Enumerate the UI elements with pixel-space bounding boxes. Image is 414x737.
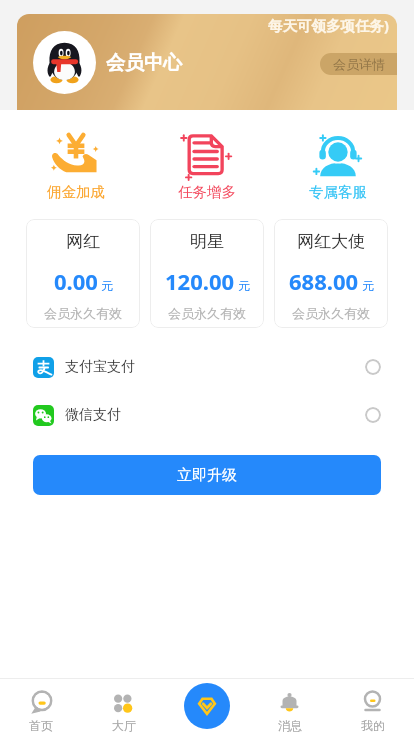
staticText: 大厅: [112, 718, 136, 733]
staticText: 0.00: [54, 266, 98, 296]
button[interactable]: 消息: [248, 683, 331, 733]
staticText: 元: [362, 278, 374, 293]
button[interactable]: 大厅: [82, 683, 165, 733]
staticText: 元: [238, 278, 250, 293]
staticText: 688.00: [289, 266, 359, 296]
button[interactable]: 每天可领多项任务): [17, 14, 397, 110]
button[interactable]: 首页: [0, 683, 82, 733]
staticText: 任务增多: [178, 183, 236, 201]
button[interactable]: 会员详情: [320, 53, 397, 75]
staticText: 元: [101, 278, 113, 293]
staticText: 会员中心: [106, 51, 182, 75]
staticText: 120.00: [165, 266, 235, 296]
staticText: 每天可领多项任务): [268, 15, 389, 35]
staticText: 会员永久有效: [44, 305, 122, 321]
staticText: 立即升级: [177, 466, 237, 485]
staticText: 明星: [190, 231, 224, 252]
button[interactable]: 佣金加成: [21, 125, 131, 201]
button[interactable]: 网红: [26, 219, 140, 328]
button[interactable]: 网红大使: [274, 219, 388, 328]
staticText: 网红: [66, 231, 100, 252]
button[interactable]: 支付宝支付: [0, 356, 414, 378]
button[interactable]: 我的: [331, 683, 414, 733]
staticText: 专属客服: [309, 183, 367, 201]
staticText: 会员详情: [333, 56, 385, 72]
staticText: 会员永久有效: [168, 305, 246, 321]
staticText: 微信支付: [65, 406, 121, 424]
button[interactable]: 专属客服: [283, 125, 393, 201]
button[interactable]: 微信支付: [0, 404, 414, 426]
button[interactable]: 明星: [150, 219, 264, 328]
staticText: 佣金加成: [47, 183, 105, 201]
button[interactable]: 会员: [184, 683, 230, 729]
staticText: 消息: [278, 718, 302, 733]
button[interactable]: 立即升级: [33, 455, 381, 495]
staticText: 我的: [361, 718, 385, 733]
staticText: 会员永久有效: [292, 305, 370, 321]
staticText: 支付宝支付: [65, 358, 135, 376]
staticText: 网红大使: [297, 231, 365, 252]
staticText: 首页: [29, 718, 53, 733]
button[interactable]: 任务增多: [152, 125, 262, 201]
